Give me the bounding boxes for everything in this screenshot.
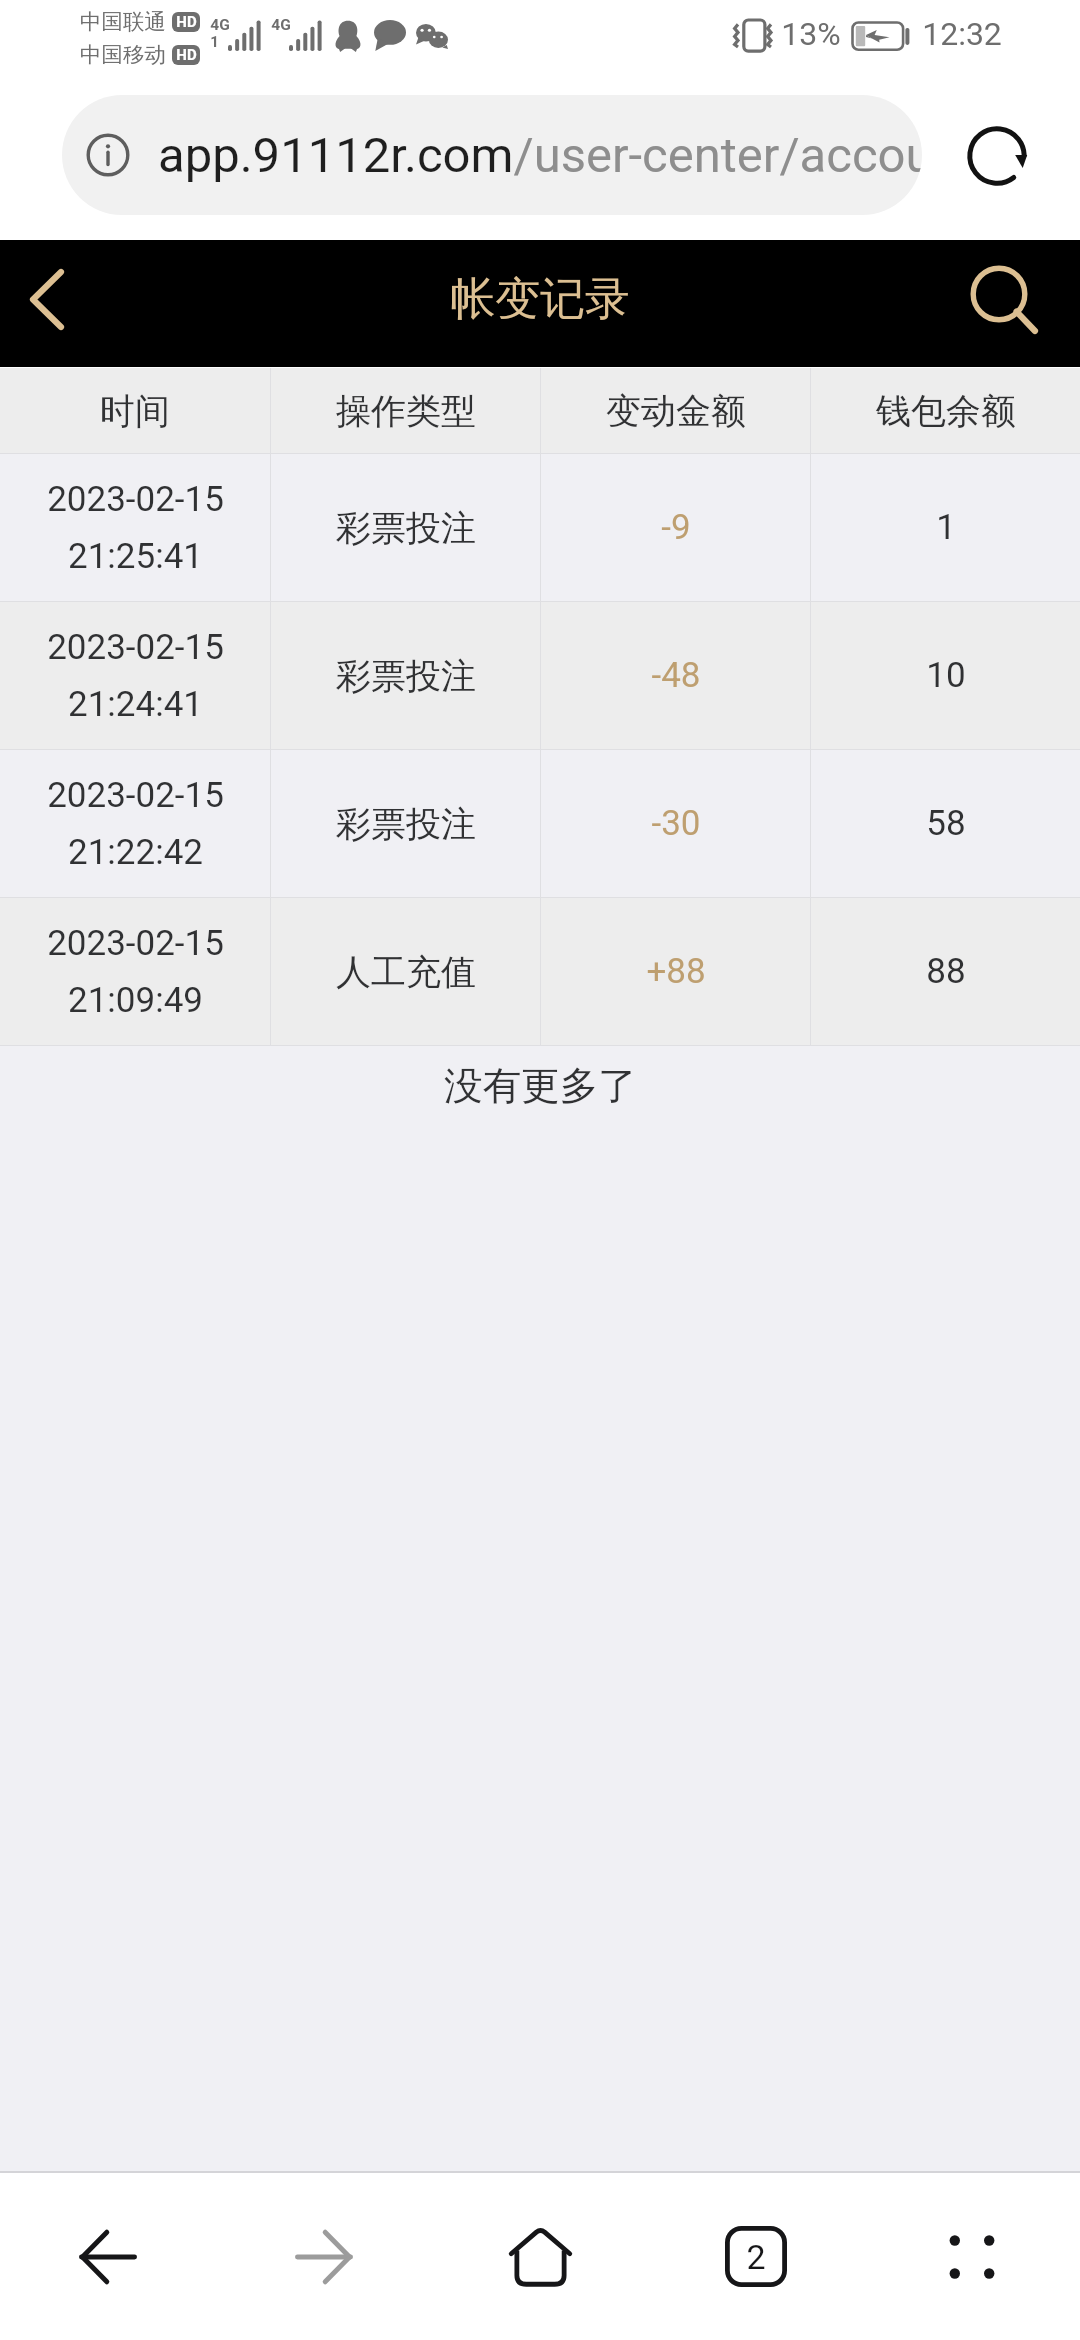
staticText: 21:25:41 [68,536,203,577]
staticText: 时间 [100,389,170,433]
staticText: 13% [781,15,841,53]
staticText: 10 [926,655,966,696]
staticText: HD [176,13,197,31]
staticText: app.91112r.com/user-center/accou [158,127,922,184]
staticText: 操作类型 [336,389,476,433]
staticText: HD [176,46,197,64]
button[interactable]: Home [432,2173,648,2340]
button[interactable]: Tabs [648,2173,864,2340]
staticText: 中国移动 [80,41,166,68]
staticText: -9 [661,507,691,548]
staticText: 彩票投注 [336,802,476,846]
button[interactable]: 2023-02-15 [0,898,1080,1045]
staticText: 2023-02-15 [47,923,224,964]
staticText: 没有更多了 [444,1062,637,1111]
staticText: 1 [936,507,956,548]
staticText: 帐变记录 [450,271,630,328]
button[interactable]: Back [0,244,110,356]
button[interactable]: Forward [216,2173,432,2340]
staticText: 钱包余额 [876,389,1016,433]
button[interactable]: 2023-02-15 [0,602,1080,749]
button[interactable]: app.91112r.com/user-center/accou [62,95,922,215]
staticText: 21:22:42 [68,832,203,873]
button[interactable]: Search [944,243,1060,355]
button[interactable]: 2023-02-15 [0,750,1080,897]
staticText: 88 [926,951,966,992]
staticText: 彩票投注 [336,654,476,698]
staticText: 2023-02-15 [47,479,224,520]
staticText: 4G [210,16,230,34]
staticText: 1 [210,33,219,51]
staticText: 12:32 [922,15,1002,53]
staticText: +88 [646,951,706,992]
staticText: 彩票投注 [336,506,476,550]
button[interactable]: Reload [966,125,1028,187]
staticText: 中国联通 [80,8,166,35]
button[interactable]: 2023-02-15 [0,454,1080,601]
staticText: 人工充值 [336,950,476,994]
staticText: 4G [271,16,291,34]
staticText: 21:24:41 [68,684,203,725]
staticText: -30 [651,803,701,844]
staticText: 2023-02-15 [47,627,224,668]
staticText: 58 [926,803,966,844]
staticText: 2023-02-15 [47,775,224,816]
button[interactable]: Back [0,2173,216,2340]
button[interactable]: More [864,2173,1080,2340]
staticText: 21:09:49 [68,980,203,1021]
staticText: -48 [651,655,701,696]
staticText: 变动金额 [606,389,746,433]
staticText: 2 [746,2237,766,2277]
